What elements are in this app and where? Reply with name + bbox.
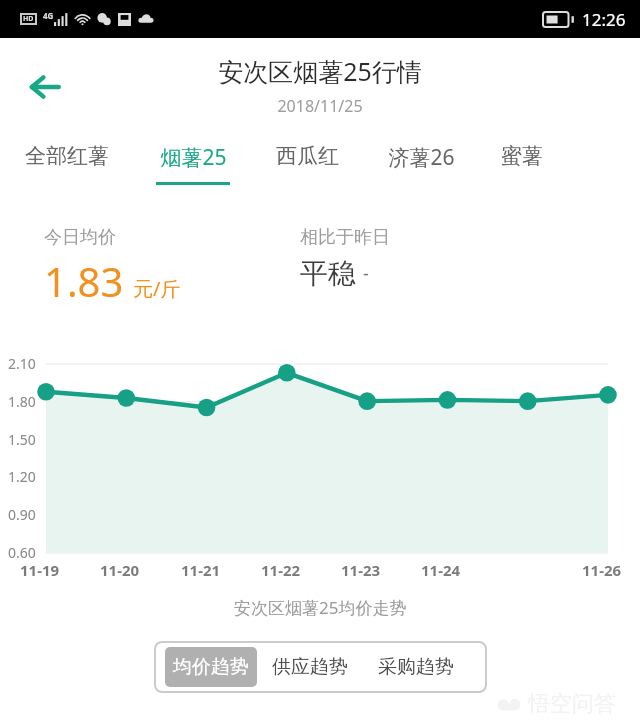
staticText: 烟薯25 [160, 143, 227, 172]
staticText: 悟空问答 [528, 690, 616, 718]
staticText: 1.20 [8, 467, 36, 486]
staticText: 供应趋势 [272, 655, 348, 679]
staticText: 12:26 [582, 8, 626, 31]
staticText: 11-23 [341, 560, 381, 580]
staticText: 1.50 [8, 430, 36, 449]
button[interactable]: 均价趋势 [165, 647, 257, 687]
button[interactable]: 采购趋势 [363, 647, 469, 687]
staticText: 均价趋势 [173, 655, 249, 679]
staticText: 安次区烟薯25行情 [218, 54, 422, 88]
staticText: 0.60 [8, 543, 36, 562]
button[interactable]: 济薯26 [380, 140, 462, 186]
staticText: 11-19 [20, 560, 60, 580]
staticText: HD [23, 14, 34, 24]
button[interactable]: 全部红薯 [15, 140, 119, 186]
button[interactable]: 供应趋势 [257, 647, 363, 687]
staticText: 今日均价 [44, 226, 116, 249]
staticText: 1.80 [8, 392, 36, 411]
staticText: 4G [43, 10, 54, 21]
staticText: 全部红薯 [25, 143, 109, 169]
staticText: 安次区烟薯25均价走势 [234, 596, 407, 619]
staticText: 2018/11/25 [277, 95, 363, 117]
staticText: 相比于昨日 [300, 226, 390, 249]
staticText: 西瓜红 [276, 143, 339, 169]
staticText: 采购趋势 [378, 655, 454, 679]
staticText: - [363, 261, 369, 286]
staticText: 平稳 [300, 256, 356, 291]
staticText: 1.83 [44, 254, 124, 308]
staticText: 11-21 [181, 560, 221, 580]
staticText: 0.90 [8, 505, 36, 524]
staticText: 蜜薯 [501, 143, 543, 169]
staticText: 济薯26 [388, 143, 455, 172]
staticText: 11-26 [582, 560, 622, 580]
staticText: 11-20 [100, 560, 140, 580]
staticText: 元/斤 [133, 275, 181, 302]
button[interactable]: 烟薯25 [152, 140, 234, 186]
staticText: 11-22 [261, 560, 301, 580]
staticText: 2.10 [8, 354, 36, 373]
staticText: 11-24 [421, 560, 461, 580]
button[interactable]: 蜜薯 [492, 140, 552, 186]
button[interactable]: 西瓜红 [266, 140, 348, 186]
button[interactable]: Back [14, 56, 76, 118]
